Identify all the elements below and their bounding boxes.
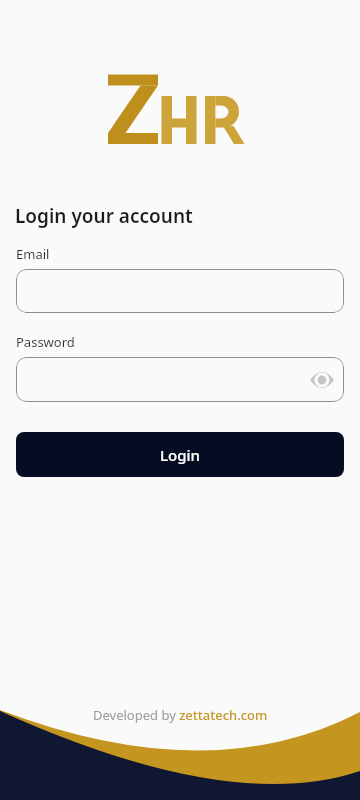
button[interactable]: Developed by zettatech.com: [93, 706, 268, 724]
button[interactable]: [16, 269, 344, 313]
button[interactable]: [16, 357, 344, 402]
button[interactable]: Login: [16, 432, 344, 477]
staticText: Login your account: [15, 203, 193, 229]
staticText: Password: [16, 333, 75, 351]
staticText: Email: [16, 245, 50, 263]
staticText: Login: [160, 445, 200, 465]
